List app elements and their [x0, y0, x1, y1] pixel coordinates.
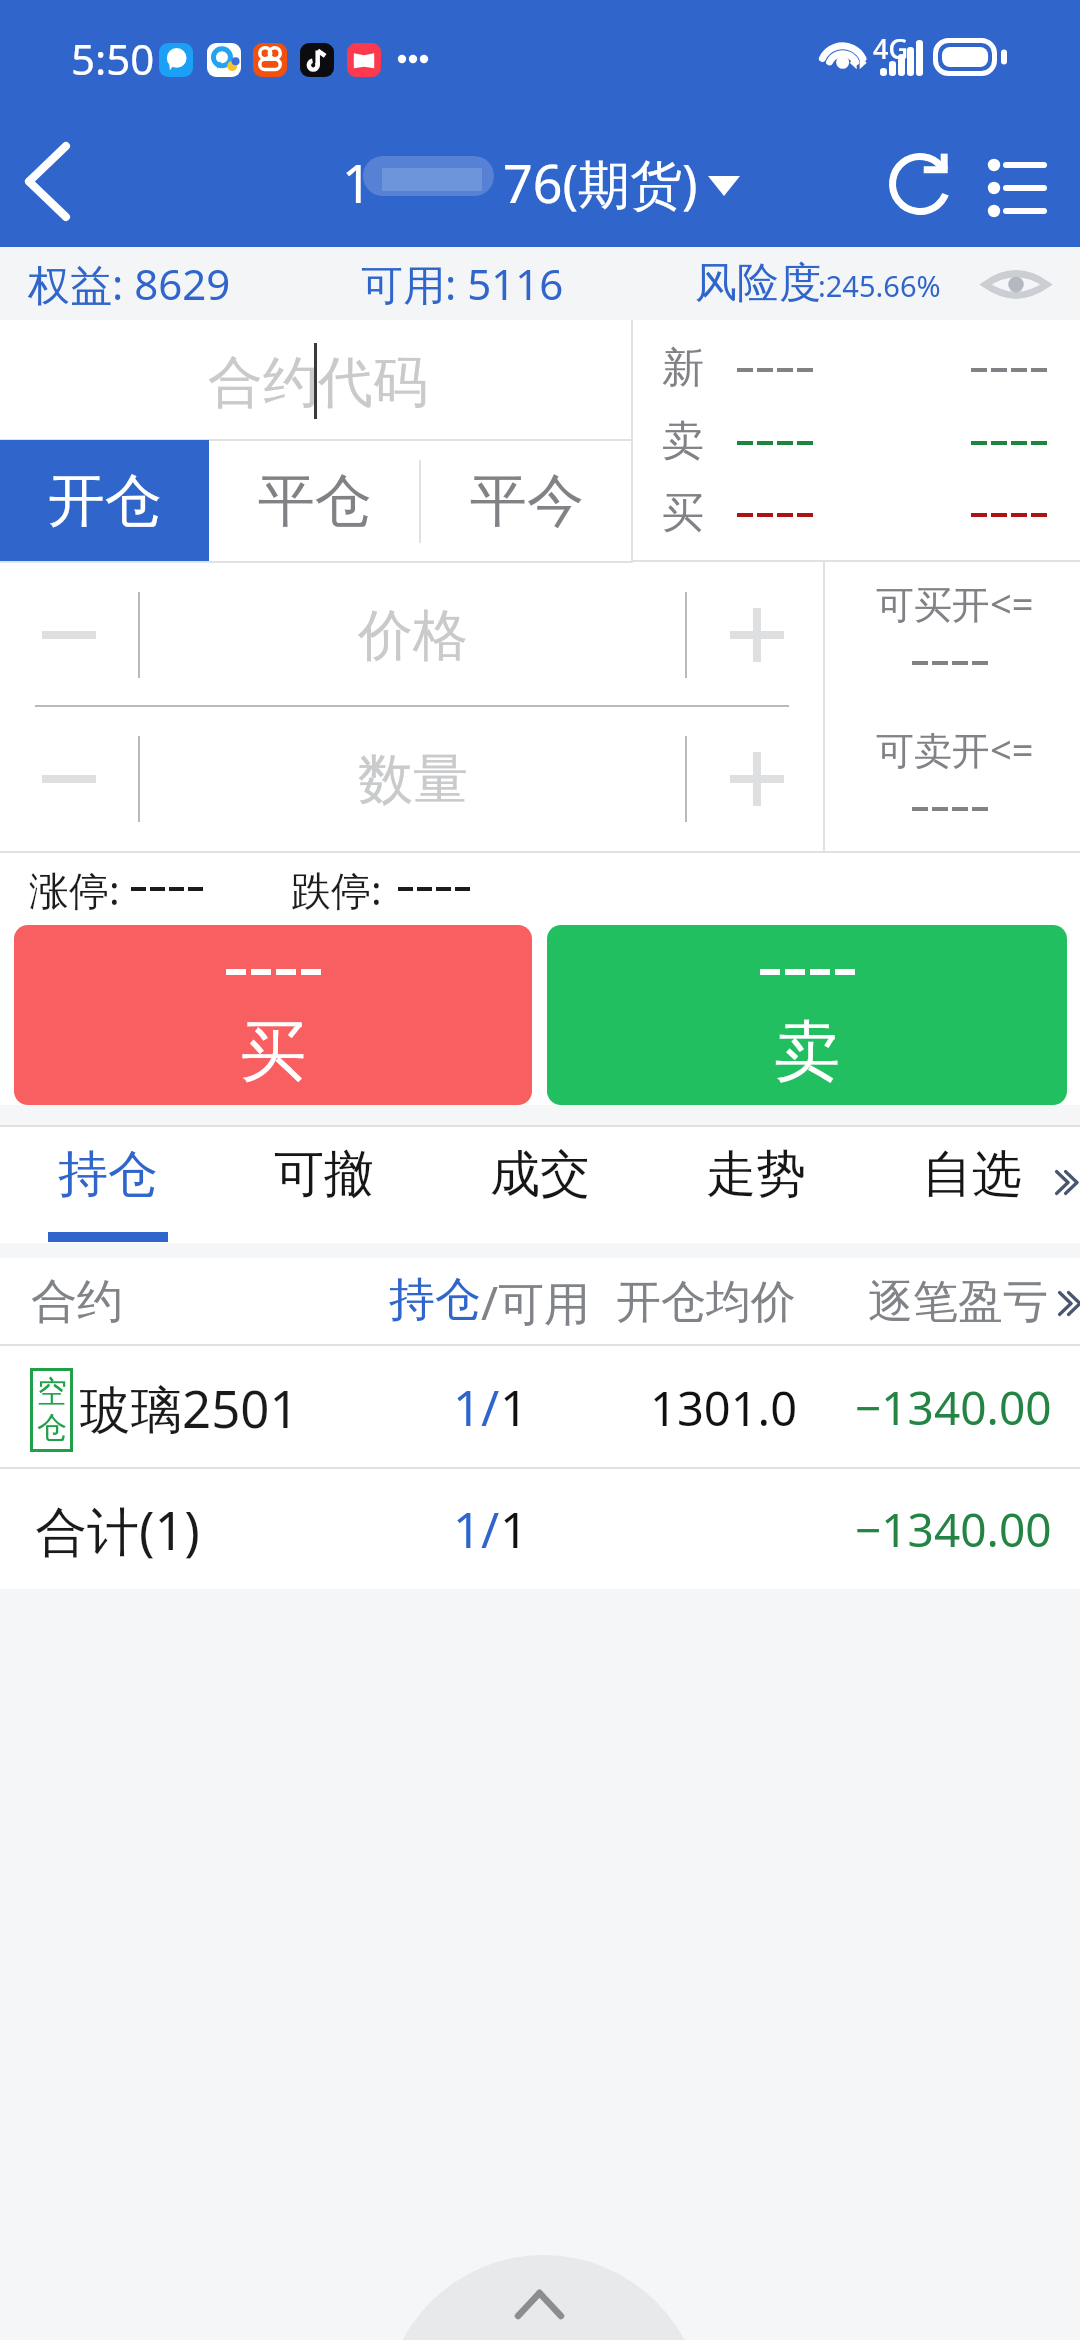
button[interactable]: Back — [0, 120, 118, 247]
button[interactable]: Decrease 数量 — [0, 707, 139, 851]
staticText: 买 — [662, 487, 704, 540]
staticText: 1301.0 — [650, 1376, 798, 1440]
staticText: 1 — [500, 1496, 529, 1563]
staticText: 4G — [873, 30, 909, 67]
button[interactable]: More tabs — [1046, 1157, 1080, 1213]
button[interactable]: 空 — [0, 1346, 1080, 1469]
staticText: 新 — [662, 342, 704, 395]
staticText: 平仓 — [258, 465, 372, 537]
button[interactable]: Menu — [970, 120, 1080, 247]
staticText: :245.66% — [818, 266, 941, 305]
button[interactable]: 买 — [14, 925, 532, 1105]
button[interactable]: Increase 价格 — [687, 563, 824, 707]
staticText: 合约 — [31, 1273, 123, 1331]
staticText: 76(期货) — [503, 147, 698, 218]
staticText: 可用: 5116 — [361, 255, 564, 312]
button[interactable]: 开仓 — [0, 440, 209, 561]
staticText: 1 — [500, 1374, 529, 1441]
staticText: 权益: 8629 — [28, 255, 231, 312]
staticText: 合计(1) — [35, 1494, 200, 1565]
staticText: 代码 — [318, 348, 428, 417]
staticText: /可用 — [481, 1271, 591, 1334]
button[interactable]: Increase 数量 — [687, 707, 824, 851]
staticText: 风险度 — [695, 257, 821, 310]
staticText: 仓 — [37, 1409, 67, 1447]
staticText: 跌停: — [291, 862, 382, 917]
staticText: 平今 — [470, 465, 584, 537]
button[interactable]: 卖 — [547, 925, 1067, 1105]
button[interactable]: 平仓 — [209, 440, 420, 561]
staticText: 可撤 — [274, 1143, 374, 1206]
button[interactable]: Toggle balance visibility — [982, 261, 1050, 308]
staticText: 合约 — [208, 348, 318, 417]
staticText: 5:50 — [71, 30, 155, 87]
staticText: 价格 — [358, 601, 468, 670]
staticText: 买 — [240, 1010, 306, 1093]
button[interactable]: 持仓 — [0, 1127, 216, 1243]
button[interactable]: 自选 — [864, 1127, 1080, 1243]
staticText: 成交 — [490, 1143, 590, 1206]
staticText: 持仓 — [58, 1143, 158, 1206]
staticText: 1/ — [453, 1374, 500, 1441]
staticText: 卖 — [662, 415, 704, 468]
staticText: 1/ — [453, 1496, 500, 1563]
staticText: 空 — [37, 1373, 67, 1411]
button[interactable]: 可撤 — [216, 1127, 432, 1243]
staticText: 玻璃2501 — [80, 1373, 299, 1443]
staticText: 开仓均价 — [616, 1274, 796, 1331]
staticText: 自选 — [922, 1143, 1022, 1206]
staticText: 可买开<= — [876, 577, 1034, 629]
staticText: 逐笔盈亏 — [868, 1274, 1048, 1331]
button[interactable]: Decrease 价格 — [0, 563, 139, 707]
staticText: 卖 — [774, 1010, 840, 1093]
staticText: 走势 — [706, 1143, 806, 1206]
staticText: 1 — [342, 147, 372, 218]
staticText: −1340.00 — [855, 1376, 1052, 1439]
button[interactable]: 平今 — [421, 440, 632, 561]
button[interactable]: 成交 — [432, 1127, 648, 1243]
button[interactable]: Refresh — [870, 120, 970, 247]
staticText: 可卖开<= — [876, 723, 1034, 775]
staticText: 数量 — [358, 745, 468, 814]
button[interactable]: 走势 — [648, 1127, 864, 1243]
staticText: 开仓 — [48, 465, 162, 537]
button[interactable]: Expand panel — [384, 2255, 703, 2340]
staticText: 涨停: — [29, 862, 120, 917]
staticText: −1340.00 — [855, 1498, 1052, 1561]
staticText: 持仓 — [389, 1271, 481, 1329]
button[interactable]: 1 — [342, 120, 742, 247]
